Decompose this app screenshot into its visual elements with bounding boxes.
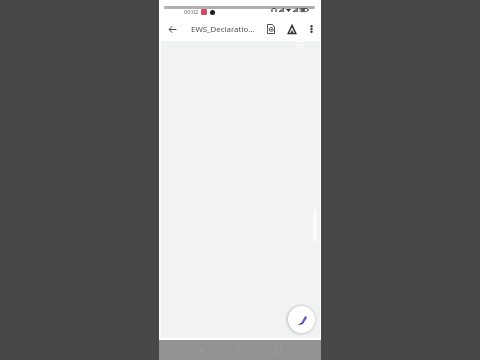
button[interactable]: Page setup: [262, 20, 280, 38]
staticText: EWS_Declaratio…: [191, 24, 261, 35]
button[interactable]: Save to Drive: [283, 20, 301, 38]
button[interactable]: More options: [302, 20, 320, 38]
staticText: 00:02: [184, 8, 199, 16]
button[interactable]: Navigate up: [162, 19, 182, 39]
button[interactable]: Edit: [288, 306, 315, 333]
